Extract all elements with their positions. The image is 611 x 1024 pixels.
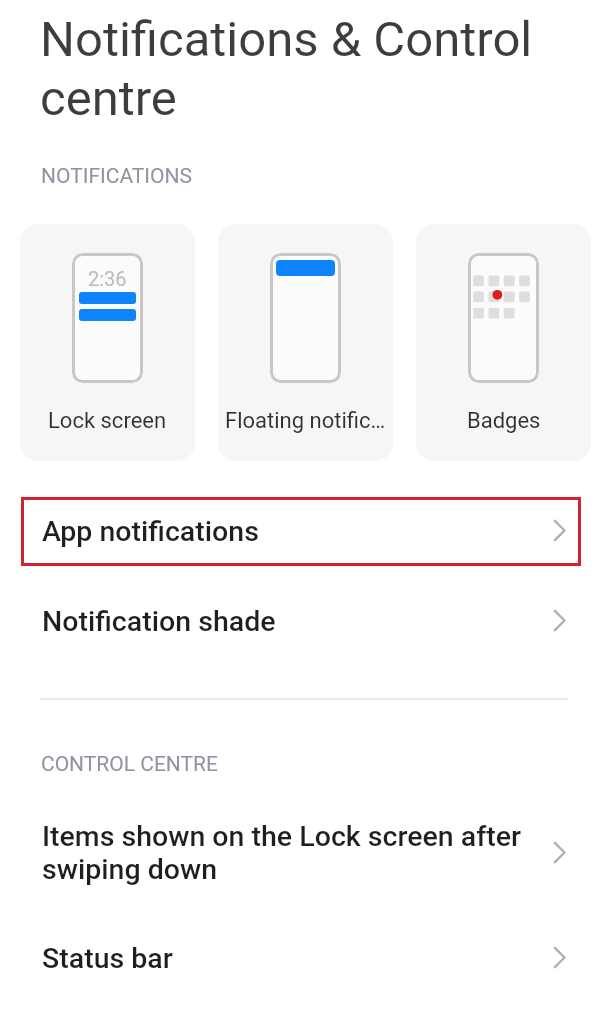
staticText: Items shown on the Lock screen after swi…: [42, 820, 524, 886]
staticText: Badges: [467, 408, 541, 434]
staticText: App notifications: [42, 515, 512, 548]
staticText: Lock screen: [48, 408, 167, 434]
staticText: CONTROL CENTRE: [41, 752, 218, 777]
other: Open Status bar: [553, 946, 566, 969]
button[interactable]: Badges: [416, 224, 591, 461]
staticText: 2:36: [88, 267, 127, 290]
button[interactable]: App notifications: [21, 497, 581, 566]
other: Open App notifications: [553, 519, 566, 542]
staticText: NOTIFICATIONS: [41, 164, 192, 189]
other: Open Notification shade: [553, 609, 566, 632]
button[interactable]: 2:36: [20, 224, 195, 461]
button[interactable]: Items shown on the Lock screen after swi…: [0, 818, 602, 888]
button[interactable]: Floating notific…: [218, 224, 393, 461]
staticText: Notification shade: [42, 605, 512, 638]
other: Open Items shown on the Lock screen afte…: [553, 841, 566, 864]
button[interactable]: Notification shade: [0, 587, 602, 656]
staticText: Status bar: [42, 942, 512, 975]
staticText: Notifications & Control centre: [40, 11, 552, 127]
staticText: Floating notific…: [225, 408, 386, 434]
button[interactable]: Status bar: [0, 924, 602, 993]
